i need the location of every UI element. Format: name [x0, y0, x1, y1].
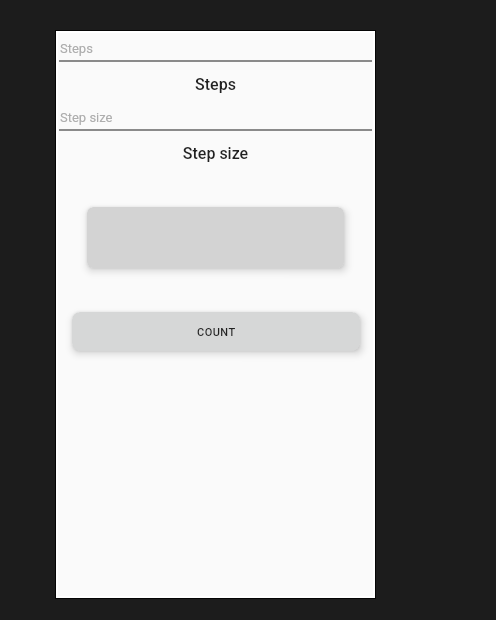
staticText: Step size — [56, 144, 375, 163]
button[interactable]: Steps — [59, 35, 372, 62]
staticText: Steps — [60, 41, 93, 56]
button[interactable]: COUNT — [72, 312, 360, 351]
staticText: Step size — [60, 110, 113, 125]
staticText: Steps — [56, 75, 375, 94]
button[interactable]: Step size — [59, 104, 372, 131]
staticText: COUNT — [197, 326, 236, 339]
